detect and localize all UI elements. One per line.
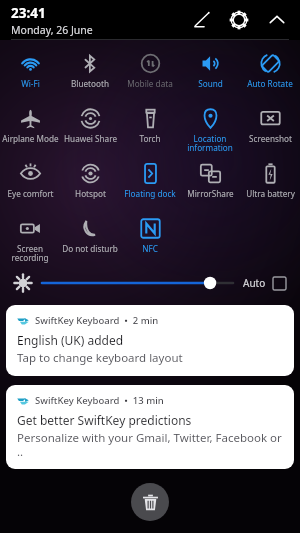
button[interactable]: Sound xyxy=(180,46,240,101)
staticText: Ultra battery xyxy=(246,188,295,199)
button[interactable]: Edit xyxy=(188,7,214,33)
staticText: Personalize with your Gmail, Twitter, Fa… xyxy=(17,430,283,459)
button[interactable]: Collapse xyxy=(264,7,290,33)
button[interactable]: Screen recording xyxy=(0,211,60,266)
staticText: Screenshot xyxy=(249,133,292,144)
button[interactable]: Ultra battery xyxy=(240,156,300,211)
button[interactable]: Settings xyxy=(226,7,252,33)
button[interactable]: Auto xyxy=(243,276,286,290)
staticText: NFC xyxy=(142,243,158,254)
staticText: Auto Rotate xyxy=(247,78,293,89)
staticText: Auto xyxy=(243,276,266,290)
staticText: Get better SwiftKey predictions xyxy=(17,412,192,428)
button[interactable]: Do not disturb xyxy=(60,211,120,266)
button[interactable]: Hotspot xyxy=(60,156,120,211)
staticText: 23:41 xyxy=(11,4,46,22)
staticText: SwiftKey Keyboard • 13 min xyxy=(35,394,164,407)
button[interactable]: Location information xyxy=(180,101,240,156)
button[interactable] xyxy=(42,273,233,293)
staticText: Floating dock xyxy=(124,188,176,199)
button[interactable]: Auto Rotate xyxy=(240,46,300,101)
other: Brightness xyxy=(14,274,32,292)
button[interactable]: SwiftKey Keyboard • 13 min xyxy=(6,385,294,469)
button[interactable]: SwiftKey Keyboard • 2 min xyxy=(6,305,294,376)
staticText: Monday, 26 June xyxy=(11,23,93,37)
staticText: Eye comfort xyxy=(7,188,54,199)
button[interactable]: Mobile data xyxy=(120,46,180,101)
staticText: Torch xyxy=(139,133,161,144)
button[interactable]: Screenshot xyxy=(240,101,300,156)
staticText: Bluetooth xyxy=(71,78,109,89)
button[interactable]: Floating dock xyxy=(120,156,180,211)
staticText: Do not disturb xyxy=(62,243,118,254)
staticText: Wi-Fi xyxy=(21,78,40,89)
staticText: English (UK) added xyxy=(17,332,124,348)
button[interactable]: Airplane Mode xyxy=(0,101,60,156)
staticText: Tap to change keyboard layout xyxy=(17,350,183,366)
staticText: Hotspot xyxy=(75,188,106,199)
staticText: Huawei Share xyxy=(64,133,117,144)
staticText: Sound xyxy=(198,78,223,89)
button[interactable]: Eye comfort xyxy=(0,156,60,211)
staticText: Mobile data xyxy=(127,78,173,89)
staticText: Location information xyxy=(187,133,233,154)
button[interactable]: MirrorShare xyxy=(180,156,240,211)
staticText: MirrorShare xyxy=(187,188,234,199)
button[interactable]: Huawei Share xyxy=(60,101,120,156)
staticText: Airplane Mode xyxy=(2,133,59,144)
button[interactable]: NFC xyxy=(120,211,180,266)
button[interactable]: Wi-Fi xyxy=(0,46,60,101)
staticText: SwiftKey Keyboard • 2 min xyxy=(35,314,159,327)
button[interactable]: Bluetooth xyxy=(60,46,120,101)
button[interactable]: Torch xyxy=(120,101,180,156)
button[interactable]: Clear all notifications xyxy=(131,483,169,521)
staticText: Screen recording xyxy=(11,243,49,264)
